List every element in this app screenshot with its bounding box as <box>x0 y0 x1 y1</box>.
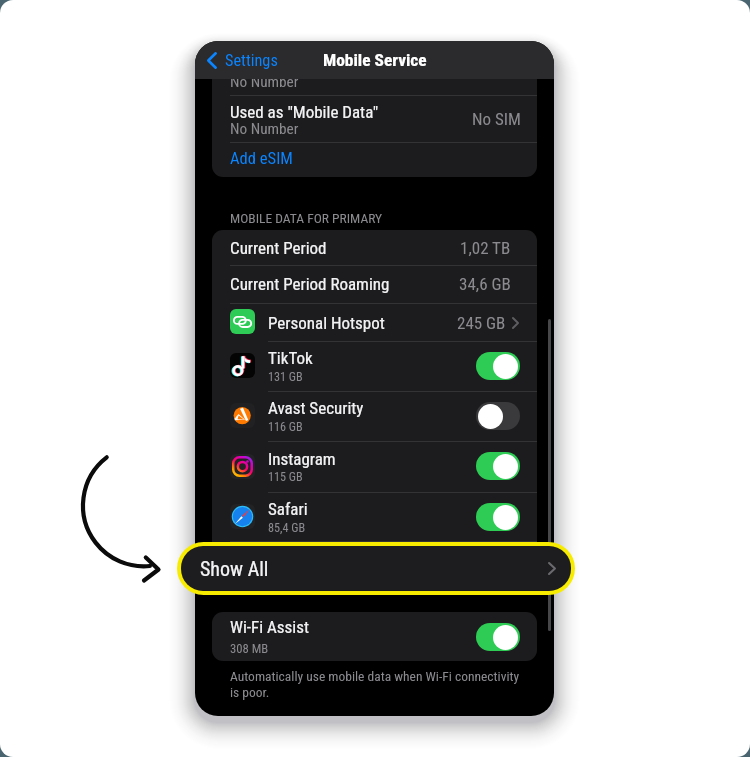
button[interactable]: Settings <box>195 41 286 79</box>
button[interactable] <box>212 230 537 265</box>
button[interactable] <box>212 391 467 441</box>
button[interactable] <box>212 541 537 590</box>
staticText: Current Period <box>230 238 327 258</box>
staticText: Mobile Service <box>323 50 427 70</box>
staticText: No Number <box>230 120 299 138</box>
staticText: MOBILE DATA FOR PRIMARY <box>230 210 383 226</box>
button[interactable] <box>212 492 467 542</box>
staticText: Add eSIM <box>230 149 293 168</box>
staticText: Personal Hotspot <box>268 313 385 333</box>
button[interactable]: Toggle on <box>476 503 520 531</box>
button[interactable] <box>212 341 467 391</box>
staticText: Instagram <box>268 449 336 469</box>
button[interactable] <box>212 612 467 661</box>
staticText: 308 MB <box>230 641 269 656</box>
button[interactable]: Show All <box>181 546 571 591</box>
button[interactable]: Toggle on <box>476 452 520 480</box>
staticText: Wi-Fi Assist <box>230 617 310 637</box>
staticText: 115 GB <box>268 470 303 484</box>
button[interactable]: Toggle on <box>476 623 520 651</box>
staticText: 34,6 GB <box>459 274 511 294</box>
staticText: Current Period Roaming <box>230 274 390 294</box>
staticText: No SIM <box>472 109 521 129</box>
staticText: No Number <box>230 73 299 91</box>
staticText: 245 GB <box>457 313 506 333</box>
button[interactable] <box>212 95 537 142</box>
staticText: 131 GB <box>268 370 303 384</box>
button[interactable] <box>212 265 537 303</box>
button[interactable] <box>212 303 537 341</box>
button[interactable]: Toggle on <box>476 352 520 380</box>
button[interactable]: Toggle off <box>476 402 520 430</box>
button[interactable] <box>212 142 537 177</box>
staticText: Show All <box>200 557 269 580</box>
staticText: TikTok <box>268 348 313 368</box>
staticText: 116 GB <box>268 420 303 434</box>
staticText: is poor. <box>230 684 270 700</box>
staticText: Automatically use mobile data when Wi-Fi… <box>230 668 520 684</box>
button[interactable] <box>212 441 467 491</box>
staticText: 85,4 GB <box>268 521 306 535</box>
staticText: Settings <box>225 51 278 70</box>
staticText: Avast Security <box>268 398 364 418</box>
staticText: Used as "Mobile Data" <box>230 102 379 122</box>
staticText: 1,02 TB <box>460 238 511 258</box>
staticText: Safari <box>268 499 308 519</box>
